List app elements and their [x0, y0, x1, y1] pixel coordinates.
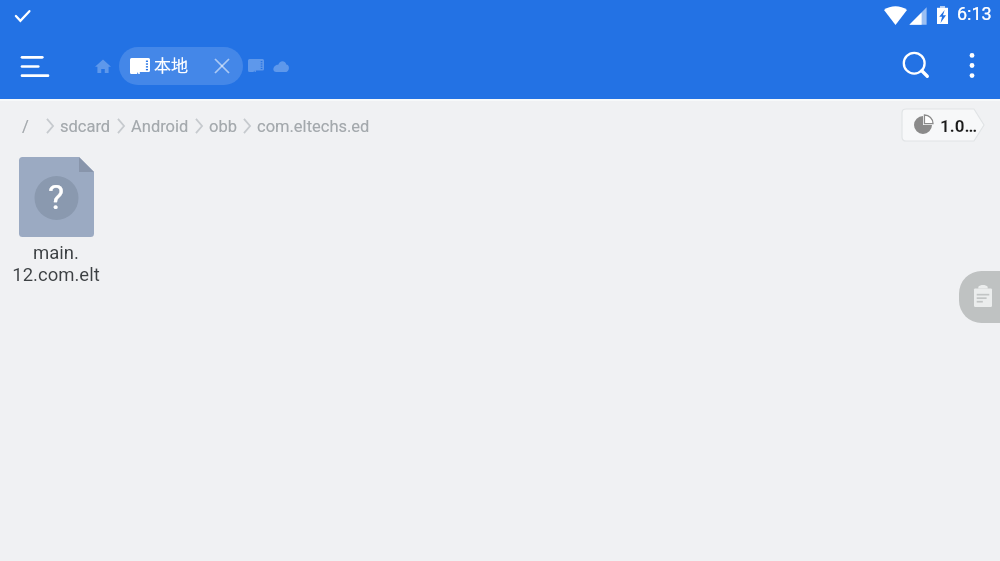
button[interactable]: /	[22, 110, 29, 143]
staticText: 6:13	[957, 3, 992, 24]
staticText: ?	[48, 177, 65, 217]
button[interactable]: Clipboard	[959, 271, 1000, 323]
button[interactable]: Android	[131, 110, 189, 143]
staticText: obb	[209, 117, 237, 136]
staticText: 本地	[154, 52, 188, 77]
staticText: Android	[131, 117, 189, 136]
button[interactable]: Menu	[8, 38, 62, 92]
button[interactable]: Search	[891, 40, 939, 88]
button[interactable]: sdcard	[60, 110, 111, 143]
staticText: 1.0…	[940, 116, 978, 136]
button[interactable]: More options	[950, 43, 994, 87]
button[interactable]: SD card	[239, 48, 273, 82]
button[interactable]: com.eltechs.ed	[257, 110, 370, 143]
button[interactable]: Home	[85, 48, 121, 84]
button[interactable]: 本地	[119, 47, 243, 85]
button[interactable]: 1.0…	[902, 109, 984, 141]
staticText: sdcard	[60, 117, 111, 136]
staticText: /	[22, 117, 29, 136]
staticText: main. 12.com.elt	[12, 242, 100, 286]
button[interactable]: Cloud storage	[264, 48, 298, 82]
button[interactable]: ?	[1, 157, 111, 286]
staticText: com.eltechs.ed	[257, 117, 370, 136]
button[interactable]: obb	[209, 110, 237, 143]
